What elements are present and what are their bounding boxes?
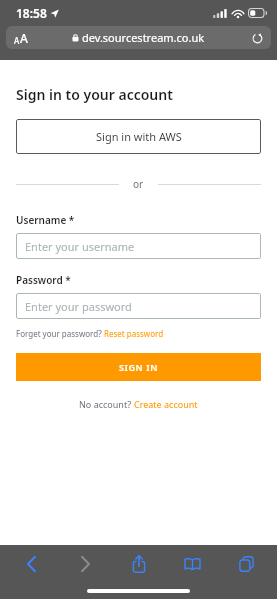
staticText: Username * bbox=[16, 213, 75, 227]
button[interactable]: Reload bbox=[250, 31, 264, 45]
button[interactable]: Sign in with AWS bbox=[16, 119, 261, 154]
staticText: Enter your username bbox=[25, 239, 135, 254]
staticText: or bbox=[133, 177, 144, 191]
staticText: No account? bbox=[79, 398, 134, 410]
staticText: Create account bbox=[134, 398, 198, 410]
button[interactable]: Enter your password bbox=[16, 293, 261, 319]
button[interactable]: Back bbox=[12, 547, 50, 581]
button[interactable]: Bookmarks bbox=[173, 547, 211, 581]
staticText: SIGN IN bbox=[119, 361, 158, 373]
staticText: dev.sourcestream.co.uk bbox=[82, 30, 205, 45]
staticText: Enter your password bbox=[25, 299, 132, 314]
staticText: Sign in to your account bbox=[16, 85, 173, 104]
staticText: Forget your password? bbox=[16, 328, 104, 339]
staticText: Sign in with AWS bbox=[96, 129, 182, 144]
staticText: Reset password bbox=[104, 328, 164, 339]
button[interactable]: Forward bbox=[66, 547, 104, 581]
staticText: 18:58 bbox=[16, 5, 47, 21]
staticText: Password * bbox=[16, 273, 71, 287]
button[interactable]: Enter your username bbox=[16, 233, 261, 259]
button[interactable]: Share bbox=[120, 547, 158, 581]
staticText: A bbox=[14, 35, 20, 46]
button[interactable]: Create account bbox=[134, 398, 198, 410]
button[interactable]: Tabs bbox=[227, 547, 265, 581]
button[interactable]: SIGN IN bbox=[16, 353, 261, 381]
button[interactable]: Reset password bbox=[104, 328, 164, 339]
button[interactable]: A bbox=[6, 26, 271, 49]
staticText: A bbox=[20, 30, 28, 46]
